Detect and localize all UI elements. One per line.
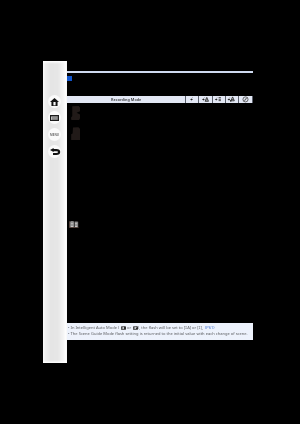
button[interactable]: Auto red-eye reduction xyxy=(212,96,225,103)
button[interactable]: Menu xyxy=(48,128,61,141)
staticText: • In Intelligent Auto Mode ( xyxy=(68,325,120,331)
button[interactable]: Auto xyxy=(199,96,212,103)
staticText: ), the flash will be set to [‡A] or [‡], xyxy=(138,325,205,331)
staticText: (P61) xyxy=(205,325,215,331)
staticText: • The Scene Guide Mode flash setting is … xyxy=(68,331,248,337)
button[interactable]: Slow sync xyxy=(225,96,238,103)
button[interactable]: Back xyxy=(48,145,61,158)
staticText: Recording Mode xyxy=(111,97,142,102)
button[interactable]: Forced flash on xyxy=(185,96,198,103)
button[interactable]: Display xyxy=(48,111,61,124)
button[interactable]: Forced flash off xyxy=(239,96,252,103)
button[interactable]: Home xyxy=(48,95,61,108)
staticText: MENU xyxy=(50,133,60,137)
staticText: or xyxy=(126,325,132,331)
